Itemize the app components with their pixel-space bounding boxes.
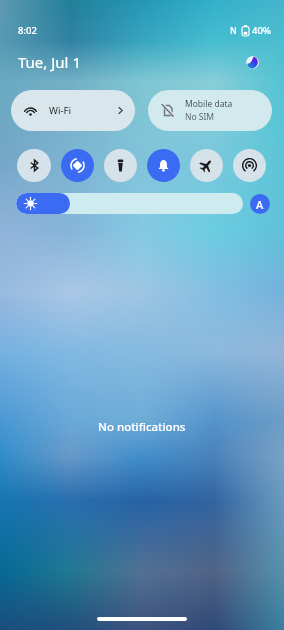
- button[interactable]: Profile: [246, 56, 259, 69]
- button[interactable]: Hotspot: [233, 149, 266, 182]
- button[interactable]: Auto brightness: [250, 194, 270, 214]
- staticText: N: [230, 25, 237, 37]
- button[interactable]: Bluetooth: [17, 149, 51, 182]
- staticText: No SIM: [185, 111, 215, 123]
- staticText: No notifications: [98, 419, 186, 435]
- button[interactable]: Wi-Fi: [11, 90, 135, 131]
- staticText: Mobile data: [185, 98, 233, 110]
- button[interactable]: Mobile data: [148, 90, 272, 131]
- button[interactable]: Flashlight: [104, 149, 137, 182]
- button[interactable]: Airplane mode: [190, 149, 223, 182]
- button[interactable]: Auto rotate: [61, 149, 94, 182]
- staticText: 40%: [252, 24, 271, 37]
- staticText: Wi-Fi: [49, 104, 72, 117]
- staticText: Tue, Jul 1: [18, 52, 81, 72]
- button[interactable]: Brightness: [16, 193, 243, 214]
- staticText: 8:02: [18, 24, 37, 37]
- button[interactable]: Notifications: [147, 149, 180, 182]
- staticText: A: [256, 197, 264, 212]
